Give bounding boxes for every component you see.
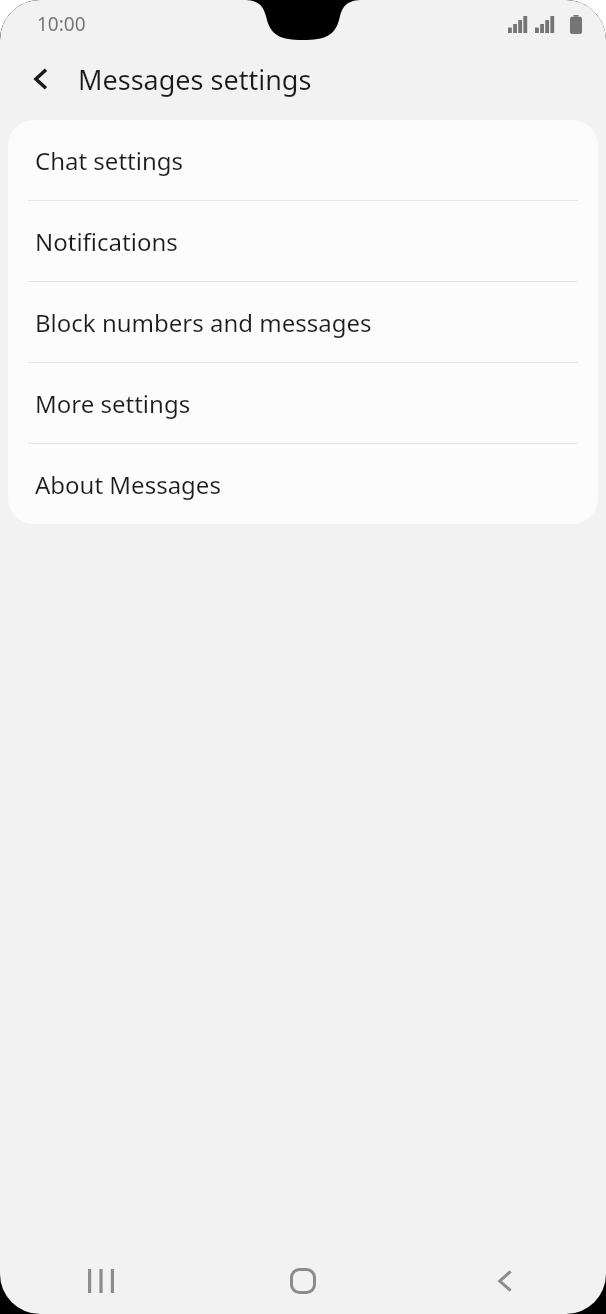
staticText: 10:00 [37,11,86,37]
staticText: Chat settings [35,144,184,177]
staticText: Block numbers and messages [35,306,372,339]
button[interactable]: Back [404,1248,606,1314]
staticText: Notifications [35,225,178,258]
button[interactable]: Block numbers and messages [8,282,598,362]
staticText: About Messages [35,468,221,501]
button[interactable]: About Messages [8,444,598,524]
button[interactable]: Recent apps [0,1248,202,1314]
staticText: More settings [35,387,191,420]
button[interactable]: Home [202,1248,404,1314]
button[interactable]: Notifications [8,201,598,281]
button[interactable]: More settings [8,363,598,443]
staticText: Messages settings [78,61,312,98]
button[interactable]: Back [18,55,66,103]
button[interactable]: Chat settings [8,120,598,200]
